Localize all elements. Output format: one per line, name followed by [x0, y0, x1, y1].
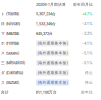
- staticText: ダ (Daihatsu): [1, 70, 23, 75]
- staticText: 645,372台: [36, 31, 53, 36]
- staticText: (海外通期株本無): [37, 51, 67, 55]
- staticText: (海外通期株本無): [37, 70, 67, 75]
- staticText: -4.1%: [82, 41, 93, 45]
- staticText: (海外通期株本無): [37, 41, 67, 46]
- staticText: -3.1%: [82, 21, 93, 26]
- staticText: -5.1%: [82, 51, 93, 55]
- staticText: 前年同月比: [73, 2, 93, 7]
- staticText: 5,307,234台: [36, 11, 56, 16]
- staticText: -3.3%: [82, 31, 93, 36]
- staticText: ス (Suzuki): [1, 80, 19, 85]
- staticText: 前年比: [81, 90, 93, 95]
- staticText: 合計: [1, 90, 9, 95]
- staticText: -5.1%: [82, 61, 93, 65]
- staticText: 停止: [85, 80, 93, 85]
- staticText: 2020年1月期決算: [36, 2, 66, 7]
- staticText: 1,533,349台: [36, 21, 56, 26]
- staticText: ト (Toyota): [1, 11, 19, 16]
- staticText: +4.7%: [82, 12, 93, 16]
- staticText: (海外通期株本無): [37, 60, 67, 65]
- staticText: ス (Subaru): [1, 51, 19, 55]
- staticText: (海外通期株本無): [37, 80, 67, 85]
- staticText: マ (Mazda): [1, 31, 19, 36]
- staticText: ホ (Honda): [1, 41, 19, 46]
- staticText: 日 (Nissan): [1, 21, 20, 26]
- staticText: 三 (Mitsubishi): [1, 60, 25, 65]
- staticText: 停止: [85, 70, 93, 75]
- staticText: 約1,100万台: [36, 90, 57, 95]
